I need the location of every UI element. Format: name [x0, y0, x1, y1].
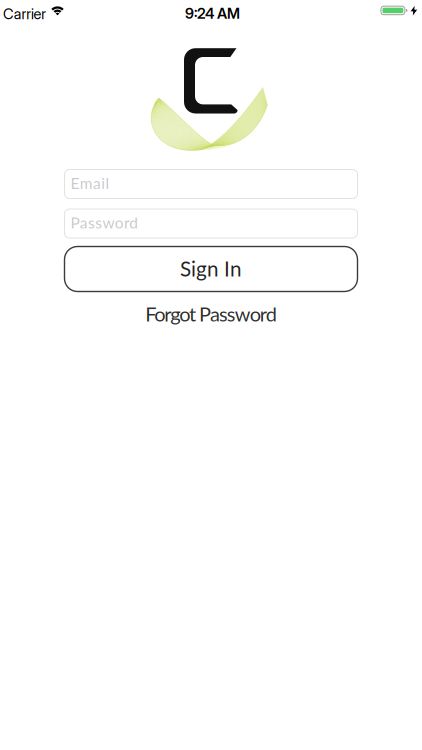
staticText: 9:24 AM — [185, 4, 240, 22]
staticText: Sign In — [180, 256, 242, 281]
staticText: Password — [70, 213, 138, 232]
staticText: Email — [64, 169, 123, 199]
staticText: Forgot Password — [145, 302, 277, 326]
staticText: Carrier — [3, 5, 46, 23]
textField[interactable]: Email — [64, 169, 357, 199]
staticText: Password — [64, 208, 168, 238]
staticText: Email — [70, 174, 109, 192]
button[interactable]: Forgot Password — [145, 302, 277, 326]
button[interactable]: Sign In — [64, 246, 357, 291]
textField[interactable]: Password — [64, 208, 357, 238]
